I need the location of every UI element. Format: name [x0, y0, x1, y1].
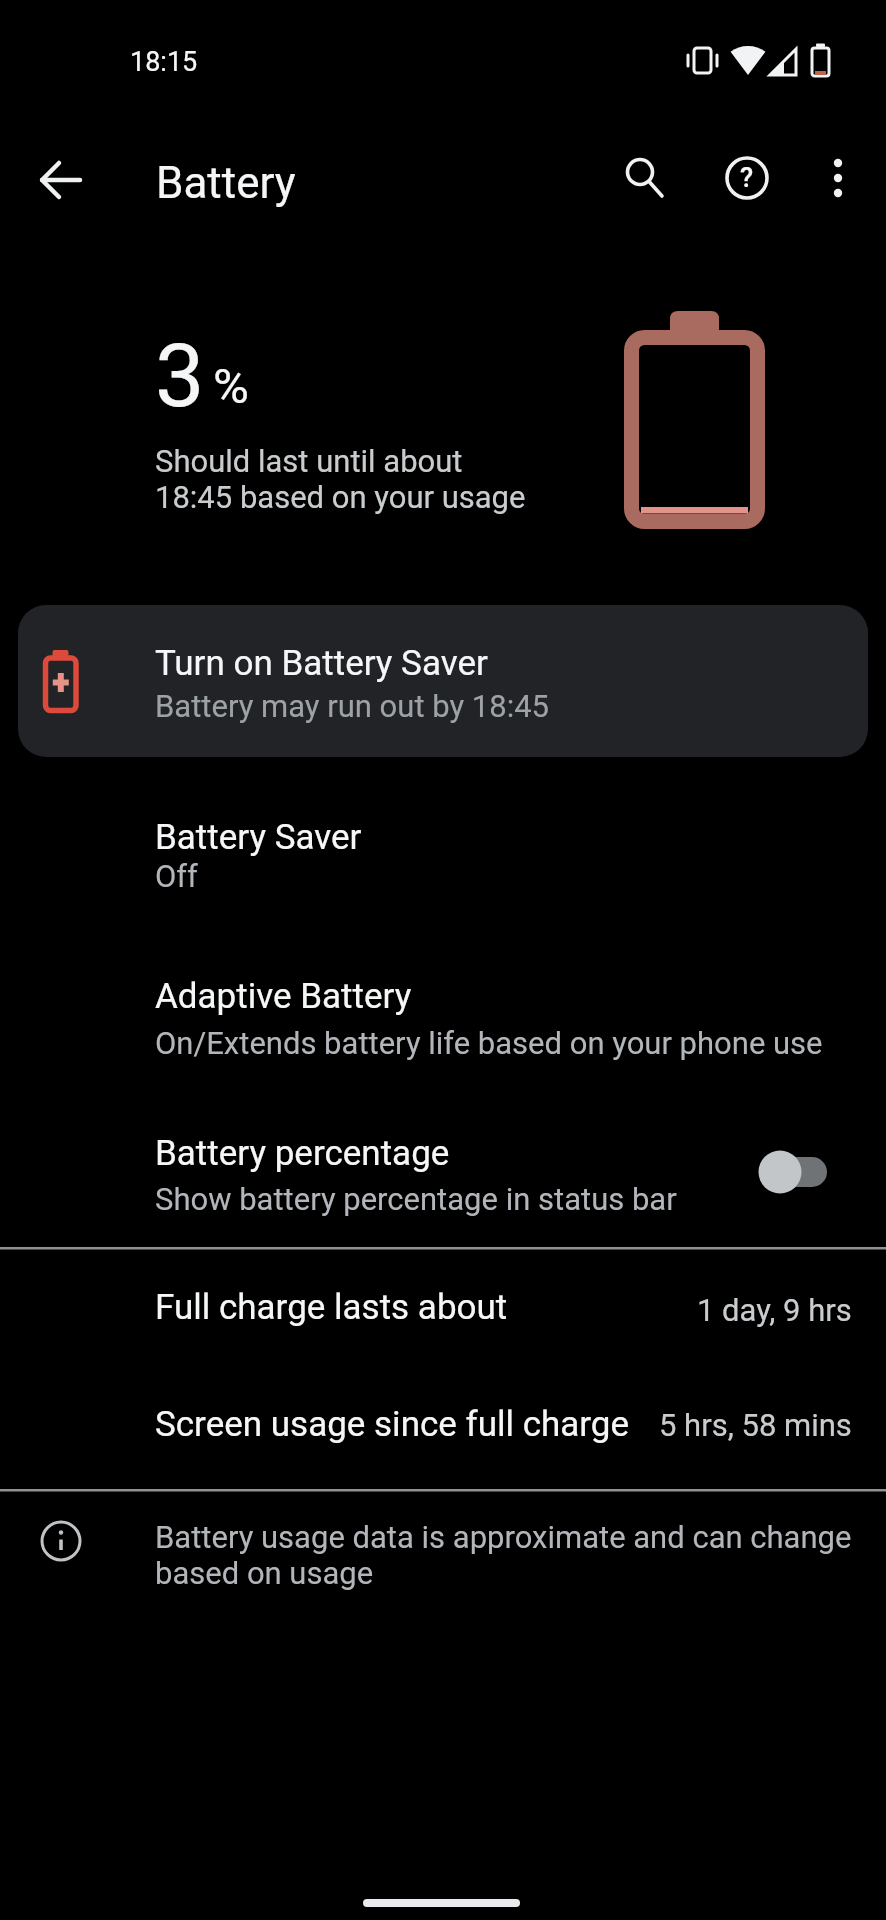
button[interactable]	[18, 605, 868, 757]
staticText: Battery usage data is approximate and ca…	[155, 1519, 852, 1591]
staticText: Battery percentage	[155, 1133, 450, 1174]
staticText: Show battery percentage in status bar	[155, 1181, 677, 1217]
button[interactable]	[0, 950, 886, 1074]
staticText: Turn on Battery Saver	[155, 643, 488, 684]
staticText: Battery	[156, 157, 296, 209]
staticText: Off	[155, 858, 198, 894]
button[interactable]	[703, 134, 791, 222]
staticText: 3	[155, 324, 205, 427]
staticText: Adaptive Battery	[155, 976, 412, 1017]
staticText: Full charge lasts about	[155, 1287, 508, 1328]
button[interactable]	[0, 1256, 886, 1366]
button[interactable]	[0, 790, 886, 908]
button[interactable]	[596, 134, 684, 222]
staticText: 5 hrs, 58 mins	[659, 1407, 852, 1443]
staticText: ?	[740, 162, 754, 194]
button[interactable]	[16, 136, 104, 224]
staticText: On/Extends battery life based on your ph…	[155, 1025, 823, 1061]
staticText: %	[213, 358, 249, 415]
staticText: 18:15	[130, 46, 198, 78]
staticText: Battery Saver	[155, 817, 362, 858]
staticText: Screen usage since full charge	[155, 1404, 630, 1445]
staticText: 1 day, 9 hrs	[697, 1292, 852, 1328]
button[interactable]	[752, 1144, 838, 1200]
staticText: Battery may run out by 18:45	[155, 688, 550, 724]
button[interactable]	[0, 1108, 886, 1232]
staticText: Should last until about 18:45 based on y…	[155, 443, 526, 516]
button[interactable]	[794, 134, 882, 222]
button[interactable]	[0, 1366, 886, 1478]
